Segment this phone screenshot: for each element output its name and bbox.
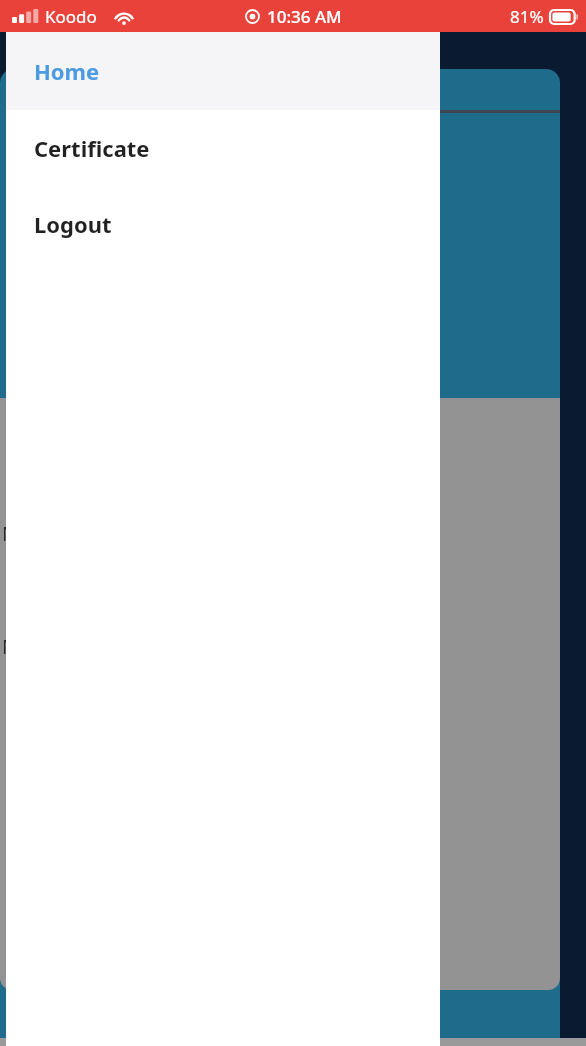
button[interactable]: Logout: [6, 186, 440, 262]
button[interactable]: Home: [6, 32, 440, 110]
staticText: Not verified: [2, 633, 113, 660]
staticText: 10:36 AM: [267, 5, 342, 28]
staticText: Home: [34, 56, 100, 86]
staticText: Not verified: [2, 520, 113, 547]
staticText: Koodo: [45, 5, 97, 28]
staticText: Logout: [34, 209, 112, 239]
staticText: Certificate: [34, 133, 150, 163]
staticText: 81%: [510, 5, 544, 28]
button[interactable]: Certificate: [6, 110, 440, 186]
